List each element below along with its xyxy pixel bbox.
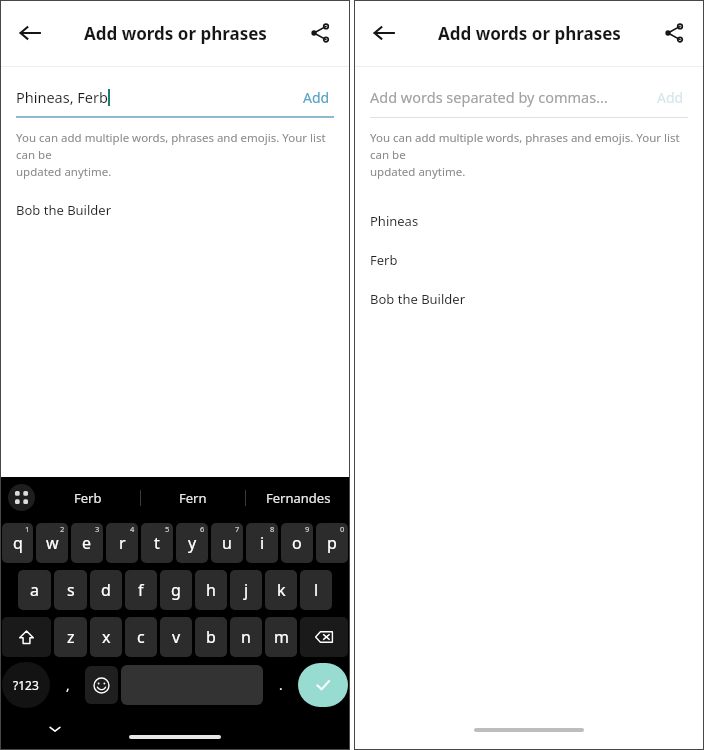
staticText: w bbox=[46, 532, 59, 554]
staticText: f bbox=[138, 579, 144, 601]
button[interactable]: Phineas bbox=[354, 201, 704, 240]
staticText: n bbox=[241, 626, 251, 648]
staticText: 0 bbox=[340, 524, 345, 534]
button[interactable]: d bbox=[90, 570, 122, 610]
staticText: Bob the Builder bbox=[370, 290, 466, 308]
button[interactable]: s bbox=[54, 570, 87, 610]
button[interactable]: . bbox=[266, 662, 295, 708]
button[interactable]: Phineas, Ferb bbox=[16, 87, 334, 107]
staticText: i bbox=[260, 532, 265, 554]
staticText: v bbox=[172, 626, 181, 648]
staticText: 5 bbox=[165, 524, 170, 534]
staticText: q bbox=[13, 532, 23, 554]
staticText: Fern bbox=[179, 489, 207, 507]
button[interactable]: Share bbox=[654, 13, 694, 53]
button[interactable]: Add bbox=[653, 88, 688, 107]
button[interactable]: l bbox=[300, 570, 332, 610]
staticText: z bbox=[67, 626, 75, 648]
staticText: 7 bbox=[235, 524, 240, 534]
button[interactable]: Bob the Builder bbox=[354, 279, 704, 318]
staticText: 4 bbox=[130, 524, 135, 534]
staticText: h bbox=[206, 579, 216, 601]
button[interactable]: v bbox=[160, 617, 192, 657]
button[interactable]: Hide keyboard bbox=[43, 717, 67, 741]
button[interactable]: Add words separated by commas… bbox=[370, 87, 688, 107]
button[interactable]: y bbox=[176, 523, 208, 563]
staticText: p bbox=[327, 532, 337, 554]
button[interactable]: c bbox=[125, 617, 157, 657]
staticText: Phineas, Ferb bbox=[16, 87, 108, 107]
staticText: k bbox=[277, 579, 286, 601]
staticText: a bbox=[30, 579, 39, 601]
staticText: Add words or phrases bbox=[438, 22, 621, 45]
button[interactable]: , bbox=[53, 662, 82, 708]
button[interactable]: Keyboard options bbox=[8, 484, 35, 511]
button[interactable]: Ferb bbox=[354, 240, 704, 279]
button[interactable]: w bbox=[36, 523, 68, 563]
staticText: j bbox=[244, 579, 249, 601]
staticText: d bbox=[101, 579, 111, 601]
staticText: s bbox=[67, 579, 75, 601]
staticText: You can add multiple words, phrases and … bbox=[16, 130, 334, 180]
button[interactable]: z bbox=[54, 617, 87, 657]
staticText: Ferb bbox=[370, 251, 398, 269]
button[interactable]: m bbox=[265, 617, 297, 657]
button[interactable]: e bbox=[71, 523, 103, 563]
button[interactable]: n bbox=[230, 617, 262, 657]
button[interactable]: x bbox=[90, 617, 122, 657]
button[interactable]: p bbox=[316, 523, 348, 563]
button[interactable]: Fernandes bbox=[246, 477, 350, 518]
button[interactable]: Backspace bbox=[300, 617, 348, 657]
staticText: l bbox=[314, 579, 319, 601]
button[interactable]: g bbox=[160, 570, 192, 610]
button[interactable]: Done bbox=[298, 663, 348, 707]
staticText: c bbox=[137, 626, 145, 648]
staticText: Phineas bbox=[370, 212, 419, 230]
staticText: 3 bbox=[95, 524, 100, 534]
staticText: 9 bbox=[305, 524, 310, 534]
staticText: r bbox=[119, 532, 126, 554]
button[interactable]: k bbox=[265, 570, 297, 610]
staticText: Bob the Builder bbox=[16, 201, 112, 219]
button[interactable]: u bbox=[211, 523, 243, 563]
button[interactable]: o bbox=[281, 523, 313, 563]
staticText: y bbox=[188, 532, 197, 554]
staticText: Ferb bbox=[74, 489, 102, 507]
staticText: g bbox=[171, 579, 181, 601]
staticText: 1 bbox=[25, 524, 30, 534]
staticText: m bbox=[274, 626, 289, 648]
button[interactable]: q bbox=[2, 523, 33, 563]
button[interactable]: Share bbox=[300, 13, 340, 53]
button[interactable]: Bob the Builder bbox=[0, 201, 350, 219]
staticText: 2 bbox=[60, 524, 65, 534]
staticText: . bbox=[279, 676, 283, 694]
staticText: x bbox=[102, 626, 111, 648]
staticText: Add words separated by commas… bbox=[370, 87, 653, 107]
button[interactable]: ?123 bbox=[2, 662, 50, 708]
staticText: o bbox=[292, 532, 302, 554]
staticText: t bbox=[154, 532, 160, 554]
button[interactable]: Back bbox=[364, 13, 404, 53]
button[interactable]: Add bbox=[299, 88, 334, 107]
button[interactable]: Emoji bbox=[85, 666, 118, 704]
button[interactable]: Fern bbox=[141, 477, 245, 518]
button[interactable]: a bbox=[18, 570, 51, 610]
staticText: 6 bbox=[200, 524, 205, 534]
button[interactable]: j bbox=[230, 570, 262, 610]
button[interactable]: f bbox=[125, 570, 157, 610]
button[interactable]: t bbox=[141, 523, 173, 563]
button[interactable]: r bbox=[106, 523, 138, 563]
button[interactable]: b bbox=[195, 617, 227, 657]
button[interactable]: Shift bbox=[2, 617, 51, 657]
button[interactable]: i bbox=[246, 523, 278, 563]
button[interactable]: Back bbox=[10, 13, 50, 53]
staticText: You can add multiple words, phrases and … bbox=[370, 130, 688, 180]
staticText: 8 bbox=[270, 524, 275, 534]
staticText: Fernandes bbox=[266, 489, 331, 507]
staticText: e bbox=[82, 532, 92, 554]
button[interactable]: h bbox=[195, 570, 227, 610]
staticText: , bbox=[66, 676, 70, 694]
staticText: u bbox=[222, 532, 232, 554]
button[interactable]: Ferb bbox=[35, 477, 140, 518]
button[interactable]: Space bbox=[121, 665, 263, 705]
